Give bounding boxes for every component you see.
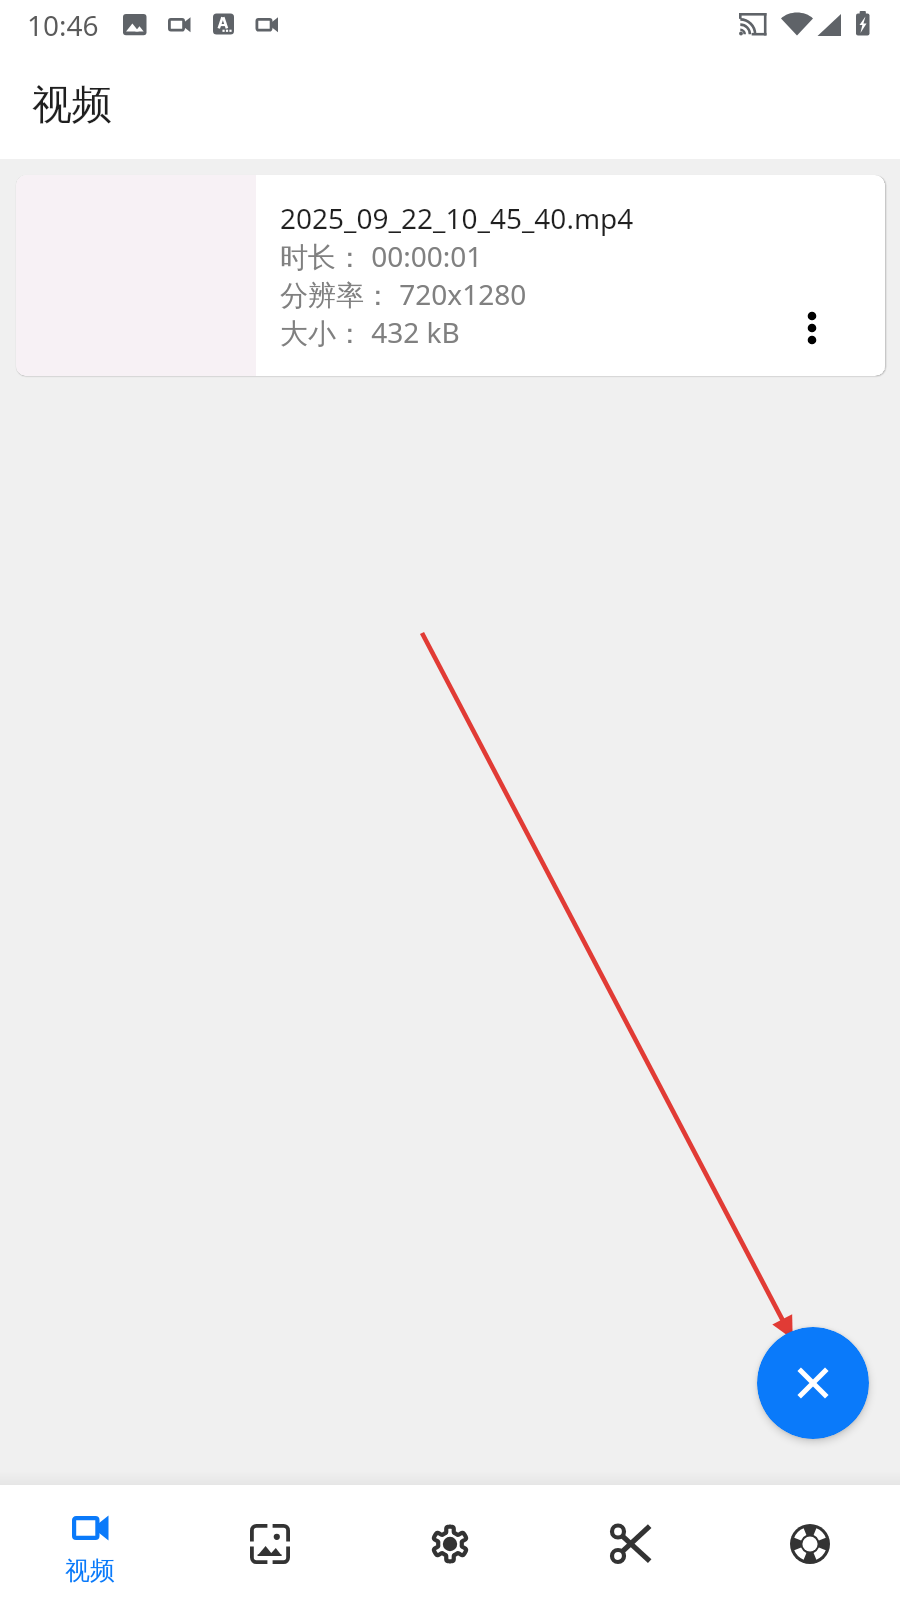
- staticText: 视频: [65, 1555, 115, 1586]
- button[interactable]: Movie: [720, 1485, 900, 1600]
- staticText: 2025_09_22_10_45_40.mp4: [280, 199, 634, 237]
- button[interactable]: 视频: [0, 1485, 180, 1600]
- button[interactable]: More options: [772, 288, 852, 368]
- button[interactable]: Close: [757, 1327, 869, 1439]
- staticText: 时长： 00:00:01: [280, 237, 483, 275]
- button[interactable]: Cut: [540, 1485, 720, 1600]
- staticText: 大小： 432 kB: [280, 313, 460, 351]
- staticText: 分辨率： 720x1280: [280, 275, 527, 313]
- button[interactable]: Settings: [360, 1485, 540, 1600]
- button[interactable]: 2025_09_22_10_45_40.mp4: [16, 175, 885, 376]
- staticText: 10:46: [27, 6, 99, 44]
- staticText: 视频: [32, 79, 112, 129]
- button[interactable]: Images: [180, 1485, 360, 1600]
